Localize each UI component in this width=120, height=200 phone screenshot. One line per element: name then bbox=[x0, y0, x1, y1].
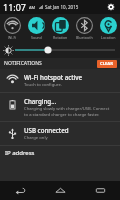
button[interactable]: Sound bbox=[24, 14, 48, 42]
staticText: Bluetooth bbox=[76, 35, 93, 40]
staticText: Wi-Fi hotspot active bbox=[24, 73, 83, 81]
staticText: Charging... bbox=[24, 97, 57, 105]
button[interactable]: Recents bbox=[80, 181, 120, 200]
button[interactable]: Wi-Fi hotspot active bbox=[0, 69, 120, 92]
button[interactable]: Brightness bbox=[0, 42, 120, 58]
staticText: Touch to configure. bbox=[24, 82, 62, 88]
staticText: Wi-Fi bbox=[8, 35, 17, 40]
staticText: Sound bbox=[31, 35, 42, 40]
button[interactable]: Settings bbox=[105, 1, 117, 13]
staticText: IP address bbox=[5, 149, 35, 157]
button[interactable]: Bluetooth bbox=[72, 14, 96, 42]
staticText: AM bbox=[29, 5, 36, 10]
staticText: Charge only bbox=[24, 135, 48, 141]
button[interactable]: USB connected bbox=[0, 122, 120, 145]
button[interactable]: Home bbox=[40, 181, 80, 200]
button[interactable]: Location bbox=[96, 14, 120, 42]
button[interactable]: Charging... bbox=[0, 93, 120, 121]
staticText: NOTIFICATIONS bbox=[4, 60, 42, 67]
staticText: Rotation bbox=[53, 35, 68, 40]
staticText: Location bbox=[101, 35, 116, 40]
button[interactable]: CLEAR bbox=[97, 60, 117, 68]
staticText: CLEAR bbox=[100, 61, 114, 67]
staticText: USB connected bbox=[24, 126, 69, 134]
staticText: 11:07 bbox=[3, 1, 27, 13]
button[interactable]: Rotation bbox=[48, 14, 72, 42]
button[interactable]: Wi-Fi bbox=[0, 14, 24, 42]
button[interactable]: Back bbox=[0, 181, 40, 200]
staticText: Sat Jan 10, 2015 bbox=[45, 4, 79, 10]
staticText: Charging slowly with charger/USB. Connec… bbox=[24, 106, 110, 117]
button[interactable]: IP address bbox=[0, 146, 120, 160]
